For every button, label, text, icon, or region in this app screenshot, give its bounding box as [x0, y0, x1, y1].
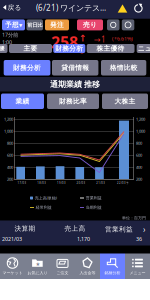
- staticText: 400: [136, 164, 142, 169]
- button[interactable]: 営業利益: [100, 224, 150, 233]
- staticText: メニュー: [129, 271, 145, 275]
- button[interactable]: 銘柄分析: [100, 253, 125, 279]
- staticText: 単位：百万円: [122, 215, 146, 220]
- staticText: ご注文: [56, 271, 68, 275]
- staticText: 通期業績 推移: [50, 79, 100, 89]
- button[interactable]: 財務比率: [47, 93, 99, 109]
- button[interactable]: 貸借情報: [52, 60, 98, 75]
- staticText: 営業利益: [105, 225, 133, 233]
- button[interactable]: 更新: [133, 3, 144, 13]
- button[interactable]: 格情比較: [101, 60, 146, 75]
- staticText: 800: [136, 140, 142, 145]
- staticText: 2021/03: [2, 235, 22, 243]
- button[interactable]: 発注: [45, 19, 69, 30]
- staticText: 17/03: [17, 181, 26, 185]
- staticText: 20/03: [77, 181, 86, 185]
- button[interactable]: マーケット: [0, 253, 25, 279]
- button[interactable]: 財務分析: [53, 44, 85, 53]
- staticText: 売上高(単独): [35, 195, 57, 201]
- staticText: 800: [7, 140, 13, 145]
- staticText: 予想▾: [5, 21, 22, 29]
- staticText: ニュース: [138, 44, 150, 53]
- staticText: ★: [36, 261, 41, 267]
- button[interactable]: メニュー: [125, 253, 150, 279]
- staticText: 17分前: [2, 31, 18, 38]
- staticText: 営業利益: [86, 195, 102, 200]
- staticText: 経常利益: [36, 205, 52, 210]
- staticText: 1,200: [4, 116, 13, 121]
- staticText: 発注: [50, 21, 64, 29]
- staticText: 600: [7, 152, 13, 157]
- button[interactable]: 予想▾: [2, 19, 25, 30]
- button[interactable]: ニュース: [137, 44, 150, 53]
- staticText: 優: [0, 45, 4, 52]
- staticText: 主要: [23, 44, 37, 53]
- staticText: (+6.61%): [112, 35, 133, 42]
- staticText: 戻る: [7, 3, 21, 12]
- button[interactable]: 財務分析: [4, 60, 50, 75]
- staticText: 売上高: [64, 224, 85, 233]
- staticText: 200: [136, 176, 142, 181]
- button[interactable]: アラート: [107, 19, 119, 30]
- staticText: 財務分析: [13, 64, 41, 72]
- staticText: 200: [7, 176, 13, 181]
- staticText: 貸借情報: [61, 64, 89, 72]
- staticText: 1,170: [77, 235, 90, 243]
- staticText: 売り: [83, 21, 97, 29]
- staticText: 銘柄分析: [104, 271, 120, 275]
- button[interactable]: 売り: [77, 19, 103, 30]
- staticText: ↑0: [79, 33, 87, 43]
- staticText: 当期利益: [86, 205, 102, 210]
- button[interactable]: 大株主: [102, 93, 148, 109]
- staticText: 大株主: [114, 97, 135, 105]
- button[interactable]: 主要: [9, 44, 52, 53]
- button[interactable]: 戻る: [3, 3, 37, 12]
- staticText: 1:00: [2, 39, 12, 46]
- staticText: 19/03: [57, 181, 66, 185]
- staticText: お気に入り: [27, 271, 47, 275]
- staticText: 決算期: [14, 224, 35, 233]
- staticText: 600: [136, 152, 142, 157]
- button[interactable]: 入出金等: [75, 253, 100, 279]
- staticText: 18/03: [37, 181, 46, 185]
- button[interactable]: 警告: [117, 4, 127, 13]
- button[interactable]: ご注文: [50, 253, 75, 279]
- staticText: 入出金等: [79, 271, 95, 275]
- staticText: 前日比: [27, 22, 42, 28]
- staticText: 株主優待: [97, 44, 125, 53]
- button[interactable]: 優: [0, 44, 7, 53]
- staticText: ›: [143, 224, 145, 235]
- staticText: 格情比較: [110, 64, 138, 72]
- staticText: 400: [7, 164, 13, 169]
- staticText: 業績: [15, 97, 29, 105]
- staticText: 財務分析: [55, 44, 83, 53]
- staticText: 22/03予: [117, 181, 129, 185]
- button[interactable]: 株主優待: [87, 44, 134, 53]
- button[interactable]: 業績: [1, 93, 44, 109]
- staticText: 1,200: [136, 116, 145, 121]
- staticText: 1,000: [136, 128, 145, 133]
- button[interactable]: 前日比: [26, 19, 43, 30]
- staticText: →16: [94, 34, 106, 42]
- staticText: マーケット: [2, 271, 22, 275]
- staticText: (6/21) ワインテスト: [36, 2, 106, 13]
- staticText: 1,000: [4, 128, 13, 133]
- staticText: 258: [51, 31, 78, 45]
- staticText: 36: [136, 235, 142, 243]
- button[interactable]: 情報: [122, 19, 134, 30]
- staticText: 21/03: [96, 181, 105, 185]
- staticText: 財務比率: [59, 97, 87, 105]
- button[interactable]: ★: [25, 253, 50, 279]
